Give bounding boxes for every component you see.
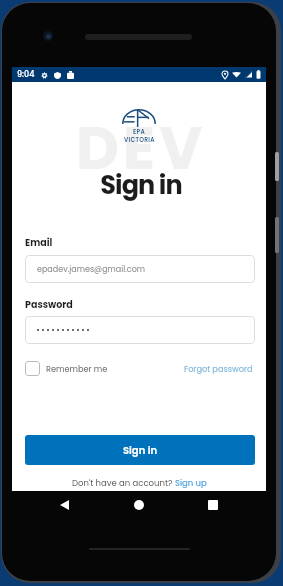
button[interactable]: Forgot password <box>184 363 253 374</box>
staticText: Password <box>25 298 73 311</box>
staticText: EPA <box>133 128 146 136</box>
staticText: Don't have an account? <box>72 477 175 489</box>
button[interactable]: Sign up <box>175 477 207 489</box>
button[interactable]: Home <box>125 491 153 519</box>
staticText: Remember me <box>46 363 108 374</box>
staticText: DEV <box>76 107 207 190</box>
staticText: Forgot password <box>184 363 253 374</box>
button[interactable] <box>25 316 255 344</box>
button[interactable]: Sign in <box>25 435 255 465</box>
button[interactable]: Recent apps <box>199 491 227 519</box>
staticText: Sign in <box>123 443 158 457</box>
button[interactable]: epadev.james@gmail.com <box>25 255 255 283</box>
button[interactable]: Remember me <box>25 361 108 376</box>
staticText: epadev.james@gmail.com <box>37 264 146 275</box>
staticText: VICTORIA <box>124 136 155 144</box>
staticText: Sign up <box>175 477 207 489</box>
staticText: Email <box>25 236 53 249</box>
staticText: 9:04 <box>17 69 35 80</box>
button[interactable]: Back <box>50 491 78 519</box>
staticText: Sign in <box>100 167 182 203</box>
